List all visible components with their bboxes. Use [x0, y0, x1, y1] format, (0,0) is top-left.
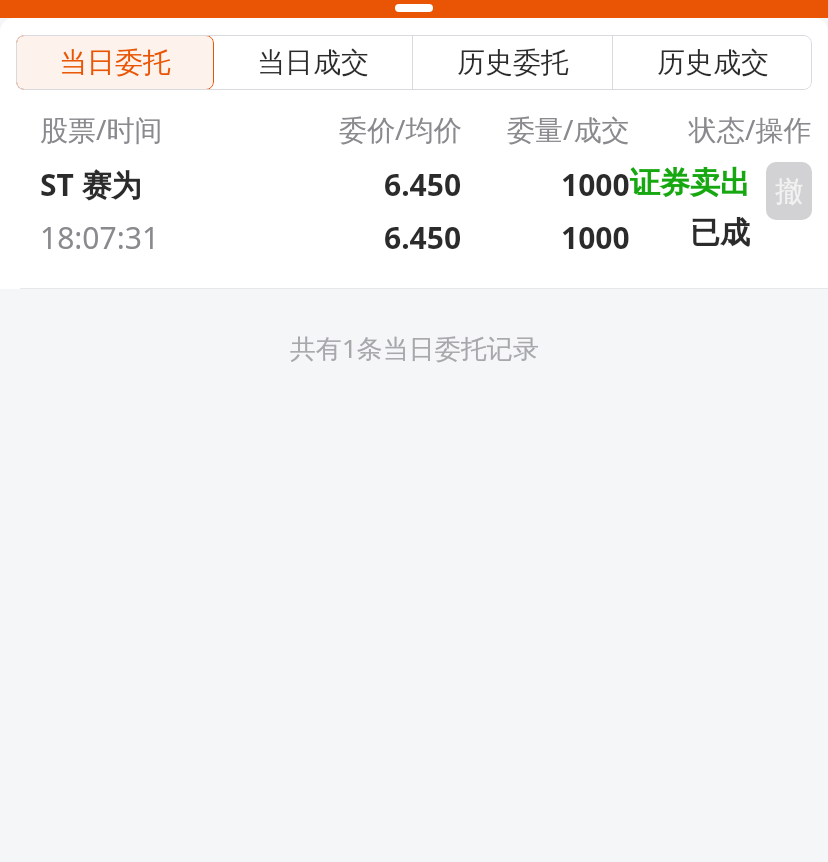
button[interactable]: ST 赛为: [40, 164, 812, 258]
staticText: 撤: [775, 174, 803, 209]
button[interactable]: 撤单: [766, 162, 812, 220]
staticText: 委量/成交: [507, 110, 630, 148]
staticText: ST 赛为: [40, 164, 142, 205]
staticText: 当日成交: [257, 45, 369, 80]
staticText: 委价/均价: [339, 110, 462, 148]
button[interactable]: 历史委托: [413, 35, 612, 90]
button[interactable]: 当日成交: [214, 35, 412, 90]
staticText: 1000: [561, 217, 630, 258]
staticText: 已成: [690, 214, 750, 252]
staticText: 共有1条当日委托记录: [290, 330, 539, 366]
button[interactable]: 当日委托: [16, 35, 214, 90]
button[interactable]: 历史成交: [613, 35, 812, 90]
staticText: 历史委托: [457, 45, 569, 80]
staticText: 证券卖出: [630, 164, 750, 202]
staticText: 6.450: [384, 217, 462, 258]
staticText: 股票/时间: [40, 110, 163, 148]
staticText: 历史成交: [657, 45, 769, 80]
staticText: 18:07:31: [40, 217, 160, 258]
staticText: 状态/操作: [689, 110, 812, 148]
staticText: 6.450: [384, 164, 462, 205]
staticText: 当日委托: [59, 45, 171, 80]
staticText: 1000: [561, 164, 630, 205]
